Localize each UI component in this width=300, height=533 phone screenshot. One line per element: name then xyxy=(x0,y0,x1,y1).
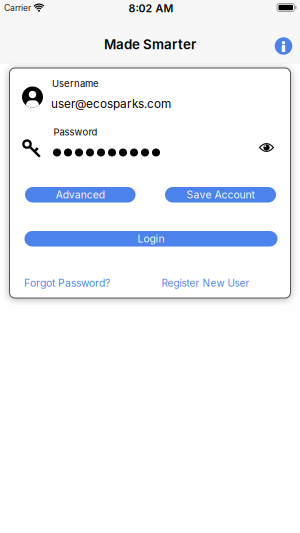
button[interactable]: Forgot Password? xyxy=(24,277,110,289)
staticText: Username xyxy=(52,78,99,89)
staticText: Carrier xyxy=(4,3,31,13)
staticText: Advanced xyxy=(56,188,105,201)
staticText: Forgot Password? xyxy=(24,277,110,289)
button[interactable]: Show Password xyxy=(258,141,275,153)
staticText: 8:02 AM xyxy=(128,2,173,15)
button[interactable]: Info xyxy=(275,37,292,55)
staticText: Register New User xyxy=(161,277,249,289)
button[interactable]: Save Account xyxy=(165,187,276,202)
staticText: user@ecosparks.com xyxy=(51,97,171,111)
staticText: Password xyxy=(53,126,97,138)
button[interactable]: Login xyxy=(24,231,277,246)
button[interactable]: Advanced xyxy=(25,187,135,202)
button[interactable]: Register New User xyxy=(161,277,249,289)
staticText: Login xyxy=(137,232,164,245)
staticText: Save Account xyxy=(186,188,254,201)
staticText: Made Smarter xyxy=(104,36,196,52)
